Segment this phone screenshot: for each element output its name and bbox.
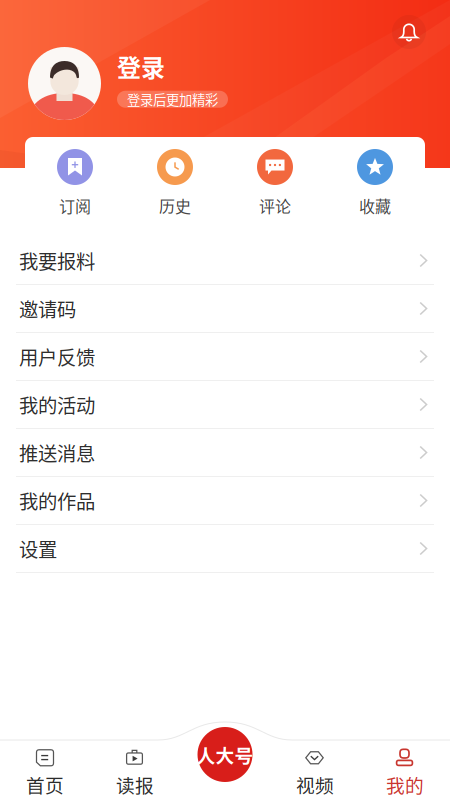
staticText: 我的作品 [19, 486, 95, 514]
staticText: 我要报料 [19, 246, 95, 274]
staticText: 历史 [159, 194, 191, 217]
staticText: 评论 [259, 194, 291, 217]
button[interactable]: 读报 [90, 740, 180, 800]
staticText: 视频 [296, 771, 334, 798]
staticText: 邀请码 [19, 294, 76, 322]
staticText: 人大号 [196, 741, 253, 768]
button[interactable]: 消息通知 [392, 15, 426, 49]
button[interactable]: 邀请码 [0, 285, 450, 333]
staticText: 推送消息 [19, 438, 95, 466]
button[interactable]: 登录 [117, 49, 165, 84]
button[interactable]: 设置 [0, 525, 450, 573]
button[interactable]: 收藏 [325, 149, 425, 217]
staticText: 读报 [116, 771, 154, 798]
button[interactable]: 推送消息 [0, 429, 450, 477]
button[interactable]: 视频 [270, 740, 360, 800]
button[interactable]: 我要报料 [0, 237, 450, 285]
button[interactable]: 评论 [225, 149, 325, 217]
button[interactable]: 订阅 [25, 149, 125, 217]
button[interactable]: 首页 [0, 740, 90, 800]
button[interactable]: 我的 [360, 740, 450, 800]
button[interactable]: 用户反馈 [0, 333, 450, 381]
button[interactable]: 人大号 [197, 727, 252, 782]
staticText: 登录后更加精彩 [127, 90, 218, 109]
staticText: 设置 [19, 534, 57, 562]
staticText: 首页 [26, 771, 64, 798]
button[interactable]: 我的作品 [0, 477, 450, 525]
staticText: 订阅 [59, 194, 91, 217]
staticText: 我的活动 [19, 390, 95, 418]
button[interactable]: 我的活动 [0, 381, 450, 429]
staticText: 登录 [117, 49, 165, 84]
staticText: 我的 [386, 771, 424, 798]
button[interactable]: 历史 [125, 149, 225, 217]
button[interactable]: 登录后更加精彩 [117, 91, 228, 108]
staticText: 用户反馈 [19, 342, 95, 370]
staticText: 收藏 [359, 194, 391, 217]
